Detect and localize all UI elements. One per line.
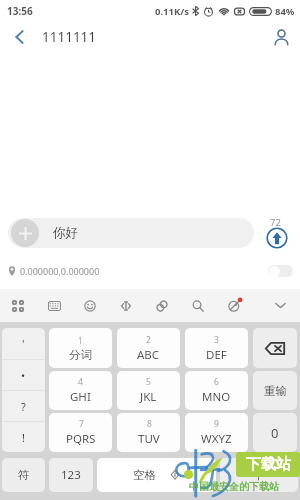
button[interactable]: Location toggle [268, 265, 293, 277]
button[interactable]: Backspace [253, 328, 297, 368]
button[interactable]: 9 [185, 413, 248, 452]
button[interactable]: 符 [2, 458, 45, 492]
staticText: 0 [271, 424, 279, 442]
button[interactable]: 3 [185, 328, 248, 368]
staticText: 13:56 [7, 4, 33, 18]
button[interactable]: Send [266, 227, 288, 249]
staticText: ? [21, 399, 26, 414]
button[interactable]: Emoji [72, 289, 108, 322]
staticText: ABC [137, 347, 160, 363]
staticText: DEF [206, 347, 227, 363]
staticText: 4 [78, 376, 83, 388]
staticText: 中 [253, 468, 265, 482]
button[interactable]: ? [2, 391, 45, 421]
staticText: 84% [275, 5, 295, 18]
button[interactable]: 1 [49, 328, 112, 368]
staticText: 0.000000,0.000000 [20, 265, 100, 277]
button[interactable]: 重输 [253, 371, 297, 410]
button[interactable]: Add attachment [11, 219, 39, 247]
staticText: 中国最安全的下载站 [189, 480, 279, 493]
staticText: 6 [214, 376, 219, 388]
staticText: • [21, 368, 26, 383]
staticText: TUV [138, 431, 160, 447]
staticText: 下载站 [246, 455, 291, 474]
staticText: WXYZ [201, 431, 232, 447]
staticText: 0.11K/s [155, 5, 189, 18]
staticText: 1 [78, 335, 83, 347]
button[interactable]: 8 [117, 413, 180, 452]
staticText: GHI [70, 389, 91, 405]
staticText: 123 [61, 467, 81, 483]
staticText: PQRS [66, 431, 96, 447]
button[interactable]: ' [2, 328, 45, 359]
button[interactable]: Back [0, 22, 38, 52]
staticText: 8 [147, 418, 152, 430]
button[interactable]: Hide keyboard [264, 289, 296, 322]
staticText: 72 [270, 216, 281, 229]
button[interactable]: 0 [253, 413, 297, 452]
button[interactable]: Search [180, 289, 216, 322]
button[interactable]: • [2, 360, 45, 390]
staticText: 2 [146, 334, 151, 346]
button[interactable]: 5 [117, 371, 180, 410]
button[interactable]: 空格 [97, 458, 216, 492]
button[interactable]: Move cursor [108, 289, 144, 322]
staticText: 9 [214, 418, 219, 430]
staticText: ! [22, 430, 25, 445]
staticText: JKL [140, 389, 157, 405]
button[interactable]: 2 [117, 328, 180, 368]
staticText: 3 [214, 334, 219, 346]
staticText: 5 [146, 376, 151, 388]
button[interactable]: 中 [220, 458, 298, 492]
button[interactable]: Contact details [264, 22, 298, 52]
button[interactable]: Settings [216, 289, 252, 322]
button[interactable]: 123 [49, 458, 93, 492]
button[interactable]: 7 [49, 413, 112, 452]
staticText: 分词 [69, 348, 92, 362]
button[interactable]: 4 [49, 371, 112, 410]
button[interactable]: Apps [0, 289, 36, 322]
button[interactable]: Keyboard [36, 289, 72, 322]
staticText: 7 [79, 418, 84, 430]
button[interactable]: 6 [185, 371, 248, 410]
staticText: 重输 [264, 384, 287, 398]
staticText: 空格 [133, 468, 156, 482]
staticText: 1111111 [42, 28, 97, 46]
button[interactable]: 你好 [8, 218, 254, 248]
button[interactable]: Clipboard [144, 289, 180, 322]
staticText: 你好 [53, 225, 78, 241]
staticText: 符 [18, 468, 30, 482]
staticText: MNO [202, 389, 231, 405]
staticText: ' [22, 336, 25, 351]
button[interactable]: ! [2, 422, 45, 452]
